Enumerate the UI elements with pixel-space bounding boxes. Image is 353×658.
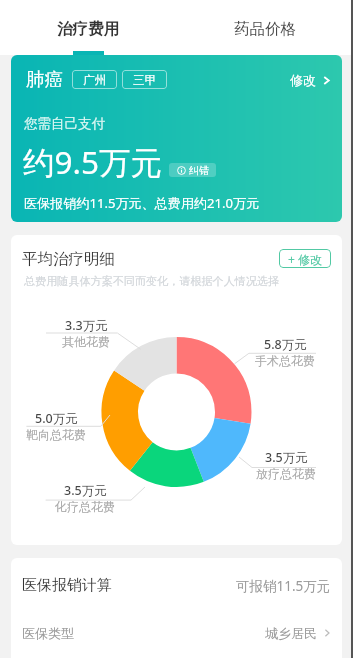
staticText: 治疗费用 <box>57 19 119 39</box>
staticText: 肺癌 <box>26 68 63 91</box>
staticText: 化疗总花费 <box>55 499 115 514</box>
staticText: 三甲 <box>133 73 156 87</box>
staticText: 手术总花费 <box>255 353 315 368</box>
staticText: 医保类型 <box>22 625 74 641</box>
staticText: + 修改 <box>288 251 322 267</box>
staticText: 医保报销计算 <box>22 576 112 595</box>
button[interactable]: 医保类型 <box>11 613 342 653</box>
button[interactable]: + 修改 <box>279 249 331 268</box>
button[interactable]: 治疗费用 <box>0 0 176 55</box>
staticText: 药品价格 <box>234 19 296 39</box>
staticText: 3.5万元 <box>64 482 107 499</box>
staticText: 城乡居民 <box>265 625 317 641</box>
staticText: 3.5万元 <box>265 449 308 466</box>
staticText: 医保报销约11.5万元、总费用约21.0万元 <box>24 194 260 212</box>
staticText: 广州 <box>83 73 106 87</box>
staticText: 平均治疗明细 <box>22 249 115 269</box>
staticText: 5.0万元 <box>35 410 78 427</box>
staticText: 总费用随具体方案不同而变化，请根据个人情况选择 <box>24 274 280 288</box>
button[interactable]: 肺癌 <box>11 55 342 222</box>
staticText: 其他花费 <box>62 334 110 349</box>
staticText: 可报销11.5万元 <box>236 577 331 595</box>
staticText: 纠错 <box>189 164 209 177</box>
staticText: 3.3万元 <box>65 317 108 334</box>
staticText: 靶向总花费 <box>26 427 86 442</box>
staticText: 您需自己支付 <box>24 115 105 132</box>
button[interactable]: 修改 <box>290 72 331 88</box>
staticText: 修改 <box>290 72 316 88</box>
button[interactable]: 药品价格 <box>176 0 353 55</box>
staticText: 放疗总花费 <box>256 466 316 481</box>
button[interactable]: 纠错 <box>169 163 216 177</box>
staticText: 约9.5万元 <box>23 140 162 183</box>
staticText: 5.8万元 <box>264 336 307 353</box>
